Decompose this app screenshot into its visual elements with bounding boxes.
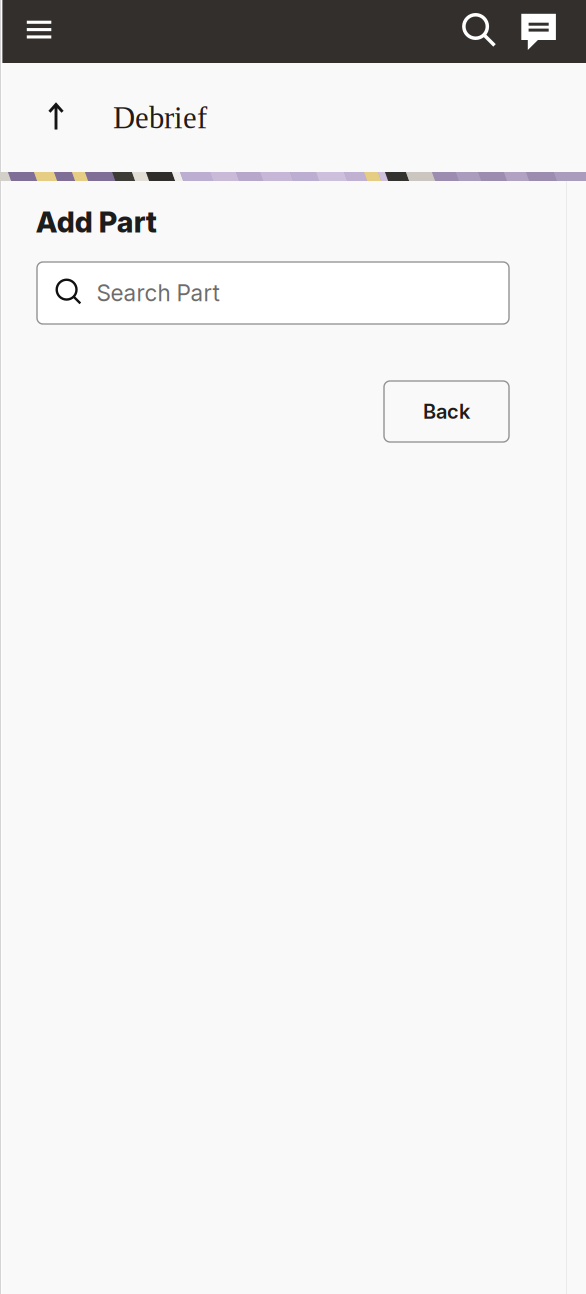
button[interactable]: Collapse [28, 83, 84, 151]
button[interactable]: Menu [0, 0, 73, 63]
staticText: Debrief [113, 101, 207, 135]
button[interactable]: Messages [507, 0, 572, 64]
button[interactable]: Back [384, 381, 509, 442]
staticText: Search Part [96, 279, 219, 307]
staticText: Back [423, 399, 470, 424]
staticText: Add Part [36, 205, 157, 239]
button[interactable]: Search [448, 0, 514, 63]
button[interactable]: Search Part [37, 262, 509, 324]
